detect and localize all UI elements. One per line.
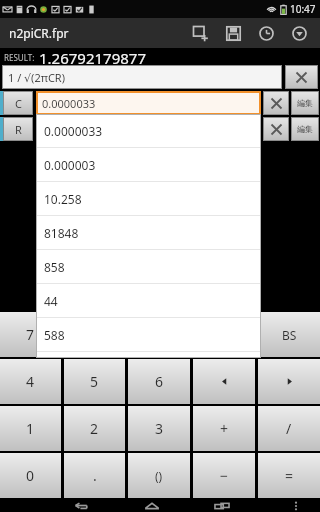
button[interactable]: . — [64, 453, 125, 498]
staticText: () — [155, 468, 163, 484]
button[interactable]: Clear C — [263, 91, 289, 115]
staticText: 81848 — [44, 225, 79, 241]
button[interactable]: 編集 — [291, 91, 319, 115]
staticText: 3 — [155, 419, 164, 438]
staticText: 4 — [26, 372, 35, 391]
staticText: + — [220, 419, 229, 438]
button[interactable]: + — [193, 406, 255, 451]
staticText: 10.258 — [44, 191, 82, 207]
button[interactable]: Clear formula — [285, 65, 318, 89]
button[interactable]: 0.0000033 — [36, 91, 261, 115]
button[interactable]: 4 — [0, 359, 61, 404]
button[interactable]: 858 — [36, 250, 261, 284]
button[interactable]: 編集 — [291, 117, 319, 141]
staticText: RESULT: — [4, 52, 35, 63]
button[interactable]: Back — [69, 500, 95, 512]
button[interactable]: More options — [283, 18, 316, 48]
button[interactable]: Menu — [285, 500, 307, 512]
button[interactable]: 2 — [64, 406, 125, 451]
staticText: 0.0000033 — [42, 122, 96, 137]
button[interactable]: () — [128, 453, 190, 498]
staticText: 編集 — [297, 124, 313, 134]
staticText: 10:47 — [290, 2, 316, 16]
button[interactable]: C — [3, 91, 33, 115]
staticText: R — [15, 122, 22, 137]
button[interactable]: 44 — [36, 284, 261, 318]
button[interactable]: 1 / √(2πCR) — [2, 65, 282, 89]
button[interactable]: C — [193, 312, 255, 357]
button[interactable]: 9 — [128, 312, 190, 357]
staticText: 6 — [155, 372, 164, 391]
button[interactable]: / — [258, 406, 320, 451]
button[interactable]: 7 — [0, 312, 61, 357]
staticText: . — [93, 466, 97, 485]
staticText: 858 — [44, 259, 65, 275]
button[interactable]: Cursor left — [193, 359, 255, 404]
staticText: − — [220, 466, 229, 485]
button[interactable]: Recents — [209, 500, 235, 512]
button[interactable]: 588 — [36, 318, 261, 352]
staticText: 1 — [26, 419, 35, 438]
button[interactable]: 3 — [128, 406, 190, 451]
button[interactable]: Cursor right — [258, 359, 320, 404]
staticText: 0 — [26, 466, 35, 485]
staticText: 7 — [26, 325, 35, 344]
button[interactable]: Clear R — [263, 117, 289, 141]
button[interactable]: 0 — [0, 453, 61, 498]
staticText: 1 / √(2πCR) — [8, 70, 65, 85]
button[interactable]: 1 — [0, 406, 61, 451]
staticText: = — [285, 466, 294, 485]
button[interactable]: 6 — [128, 359, 190, 404]
button[interactable]: Home — [139, 500, 165, 512]
staticText: 0.0000033 — [44, 123, 103, 139]
button[interactable]: New file — [184, 18, 217, 48]
button[interactable]: 0.0000033 — [36, 114, 261, 148]
staticText: 5 — [90, 372, 99, 391]
button[interactable]: History — [250, 18, 283, 48]
staticText: 0.0000033 — [42, 96, 96, 111]
button[interactable]: 0.000003 — [36, 148, 261, 182]
button[interactable]: = — [258, 453, 320, 498]
staticText: 588 — [44, 327, 65, 343]
staticText: 1.26792179877 — [39, 48, 146, 64]
staticText: 44 — [44, 293, 58, 309]
staticText: 編集 — [297, 98, 313, 108]
staticText: BS — [282, 327, 297, 343]
button[interactable]: Save — [217, 18, 250, 48]
button[interactable]: 0.0000033 — [36, 117, 261, 141]
button[interactable]: − — [193, 453, 255, 498]
staticText: 0.000003 — [44, 157, 96, 173]
staticText: n2piCR.fpr — [9, 25, 69, 41]
button[interactable]: 81848 — [36, 216, 261, 250]
button[interactable]: 5 — [64, 359, 125, 404]
button[interactable]: BS — [258, 312, 320, 357]
staticText: 2 — [90, 419, 99, 438]
staticText: / — [286, 419, 292, 438]
button[interactable]: 8 — [64, 312, 125, 357]
staticText: C — [15, 96, 22, 111]
button[interactable]: 10.258 — [36, 182, 261, 216]
button[interactable]: R — [3, 117, 33, 141]
